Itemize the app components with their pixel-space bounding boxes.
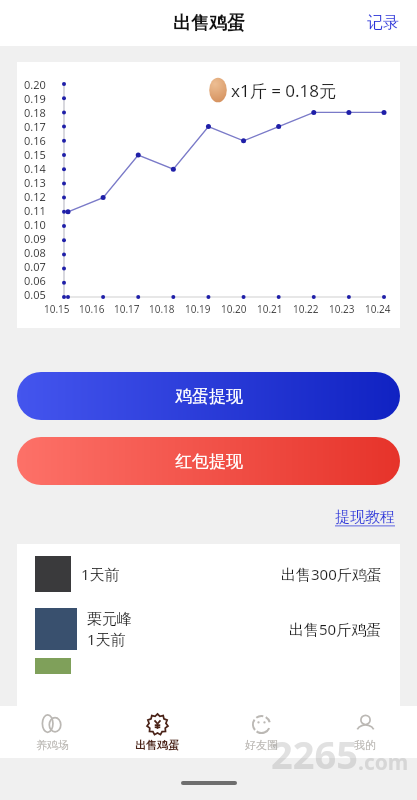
staticText: 0.08 <box>24 245 46 259</box>
staticText: 0.07 <box>24 259 46 273</box>
staticText: 0.13 <box>24 175 46 189</box>
staticText: 1天前 <box>81 564 120 584</box>
button[interactable]: 栗元峰 <box>17 600 400 658</box>
staticText: 10.17 <box>114 302 140 316</box>
button[interactable] <box>17 658 400 682</box>
staticText: 10.19 <box>185 302 211 316</box>
staticText: 栗元峰 <box>87 610 132 629</box>
staticText: 10.16 <box>79 302 105 316</box>
staticText: 0.12 <box>24 189 46 203</box>
staticText: 出售鸡蛋 <box>135 738 179 752</box>
button[interactable]: 养鸡场 <box>0 706 105 758</box>
staticText: 红包提现 <box>175 451 243 472</box>
staticText: 2265 <box>271 728 358 780</box>
staticText: 养鸡场 <box>36 738 69 752</box>
staticText: x1斤 = 0.18元 <box>231 79 337 102</box>
staticText: 10.20 <box>221 302 247 316</box>
staticText: 0.17 <box>24 119 46 133</box>
staticText: 好友圈 <box>245 738 278 752</box>
staticText: 10.21 <box>257 302 283 316</box>
staticText: 鸡蛋提现 <box>175 386 243 407</box>
staticText: 0.20 <box>24 77 46 91</box>
button[interactable]: 我的 <box>313 706 417 758</box>
staticText: 10.15 <box>44 302 70 316</box>
staticText: .com <box>358 748 409 777</box>
staticText: 1天前 <box>87 629 126 649</box>
staticText: 0.18 <box>24 105 46 119</box>
staticText: 0.10 <box>24 217 46 231</box>
button[interactable]: 提现教程 <box>331 505 399 530</box>
button[interactable]: 红包提现 <box>17 437 400 485</box>
staticText: 10.18 <box>149 302 175 316</box>
staticText: 出售300斤鸡蛋 <box>281 564 382 584</box>
staticText: 10.24 <box>365 302 391 316</box>
staticText: 0.09 <box>24 231 46 245</box>
staticText: 提现教程 <box>335 508 395 527</box>
staticText: 出售50斤鸡蛋 <box>289 619 382 639</box>
staticText: 记录 <box>367 13 399 33</box>
button[interactable]: 1天前 <box>17 548 400 600</box>
staticText: 0.06 <box>24 273 46 287</box>
staticText: 0.16 <box>24 133 46 147</box>
button[interactable]: 好友圈 <box>209 706 313 758</box>
staticText: 出售鸡蛋 <box>173 12 245 35</box>
button[interactable]: 鸡蛋提现 <box>17 372 400 420</box>
staticText: 10.23 <box>329 302 355 316</box>
staticText: 10.22 <box>293 302 319 316</box>
staticText: 0.19 <box>24 91 46 105</box>
button[interactable]: 出售鸡蛋 <box>105 706 209 758</box>
staticText: 0.14 <box>24 161 46 175</box>
staticText: 我的 <box>354 738 376 752</box>
staticText: 0.05 <box>24 287 46 301</box>
button[interactable]: 记录 <box>349 1 417 45</box>
staticText: 0.11 <box>24 203 46 217</box>
staticText: 0.15 <box>24 147 46 161</box>
